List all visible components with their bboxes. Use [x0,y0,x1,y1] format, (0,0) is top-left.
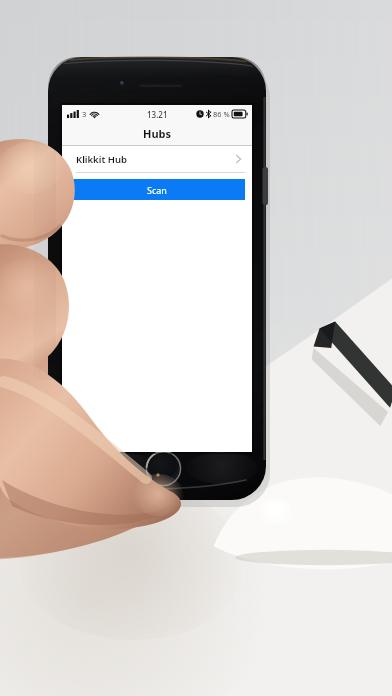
staticText: Scan [147,184,167,196]
staticText: 86 % [213,109,230,119]
staticText: Klikkit Hub [76,153,127,166]
button[interactable]: Klikkit Hub [62,146,252,172]
staticText: Hubs [143,126,172,141]
button[interactable]: Scan [69,179,245,200]
staticText: 3 [82,109,87,119]
staticText: 13.21 [147,109,168,120]
